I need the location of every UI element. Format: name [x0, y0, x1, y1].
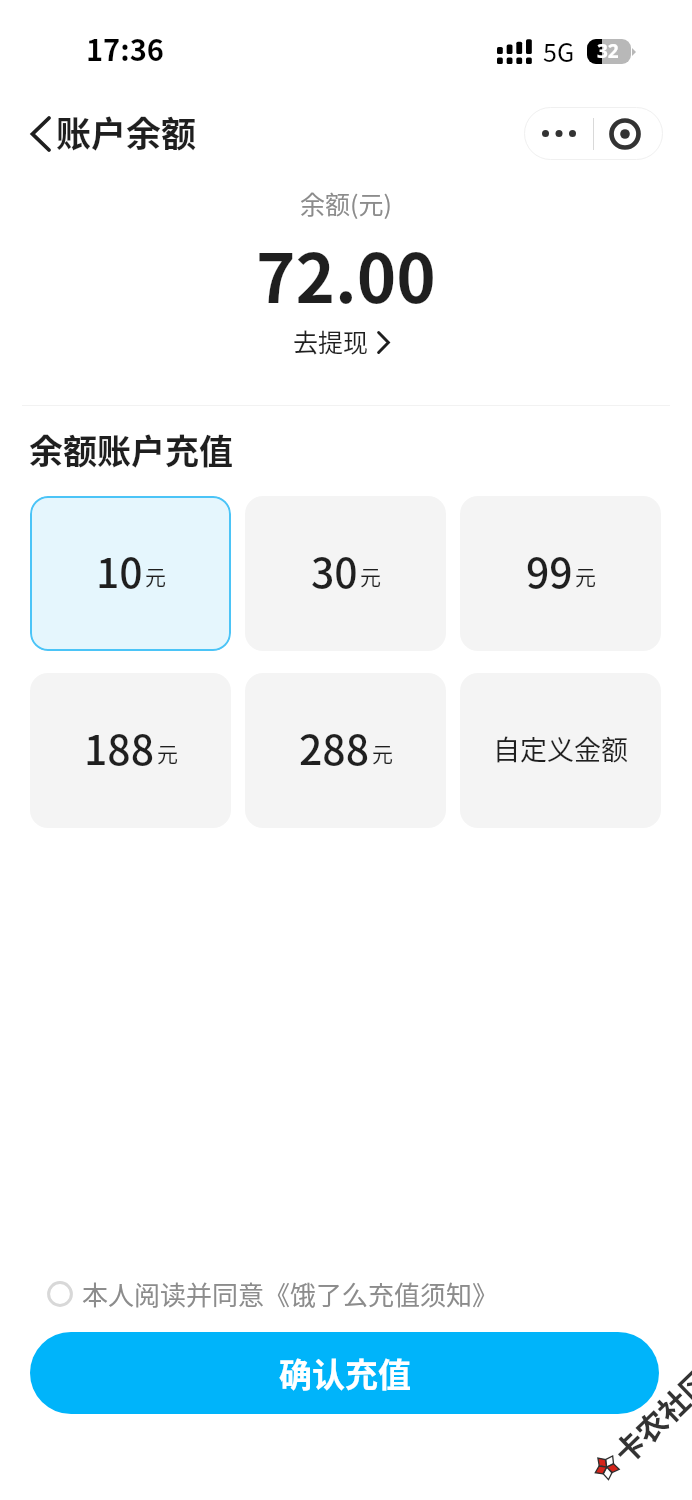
staticText: 自定义金额	[493, 729, 628, 768]
other: Back	[30, 116, 51, 152]
staticText: 去提现	[293, 323, 369, 359]
button[interactable]: 去提现	[293, 323, 390, 359]
button[interactable]: 10	[30, 496, 231, 651]
button[interactable]: More options	[524, 107, 593, 160]
staticText: 元	[145, 561, 166, 591]
staticText: 72.00	[256, 225, 436, 322]
staticText: 17:36	[86, 27, 164, 69]
button[interactable]: 30	[245, 496, 446, 651]
staticText: 余额(元)	[300, 185, 392, 221]
button[interactable]: 自定义金额	[460, 673, 661, 828]
button[interactable]: 99	[460, 496, 661, 651]
button[interactable]: 188	[30, 673, 231, 828]
staticText: 99	[526, 540, 573, 599]
staticText: 5G	[543, 33, 575, 69]
button[interactable]: Back	[30, 108, 199, 159]
staticText: 188	[84, 717, 155, 776]
staticText: 元	[360, 561, 381, 591]
staticText: 元	[157, 738, 178, 768]
staticText: 288	[299, 717, 370, 776]
staticText: 元	[575, 561, 596, 591]
staticText: 元	[372, 738, 393, 768]
staticText: 卡农社区	[603, 1357, 692, 1472]
staticText: 余额账户充值	[29, 425, 233, 474]
staticText: 本人阅读并同意《饿了么充值须知》	[82, 1275, 499, 1313]
button[interactable]: 本人阅读并同意《饿了么充值须知》	[47, 1275, 499, 1313]
button[interactable]: 确认充值	[30, 1332, 659, 1414]
staticText: 10	[96, 540, 143, 599]
staticText: 32	[597, 39, 619, 63]
staticText: 账户余额	[56, 106, 197, 157]
staticText: 30	[311, 540, 358, 599]
staticText: 确认充值	[279, 1349, 411, 1397]
button[interactable]: Close mini program	[594, 107, 663, 160]
button[interactable]: 288	[245, 673, 446, 828]
